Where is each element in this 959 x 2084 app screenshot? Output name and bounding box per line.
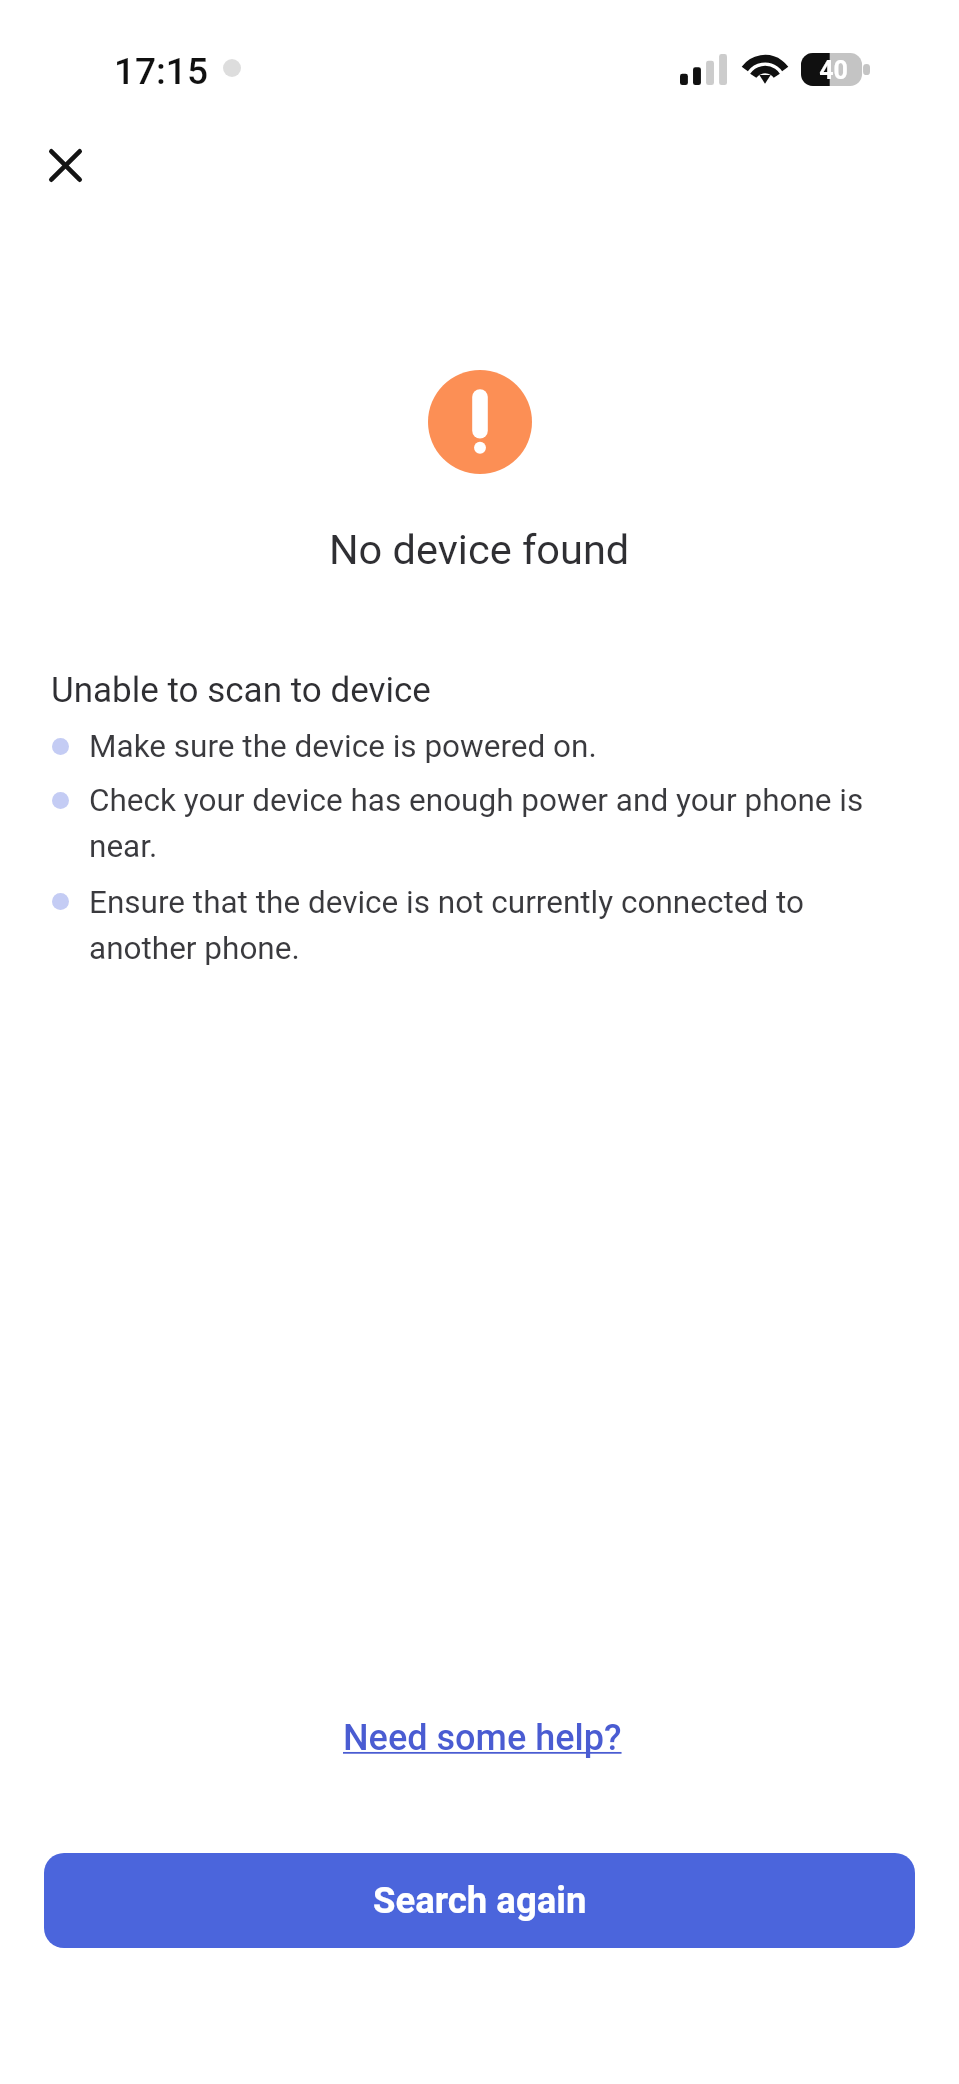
button[interactable]: Need some help? bbox=[331, 1711, 634, 1765]
staticText: Check your device has enough power and y… bbox=[89, 782, 889, 865]
staticText: Ensure that the device is not currently … bbox=[89, 884, 889, 967]
button[interactable]: Search again bbox=[44, 1853, 915, 1948]
staticText: Make sure the device is powered on. bbox=[89, 728, 889, 765]
staticText: 17:15 bbox=[114, 50, 208, 93]
staticText: Search again bbox=[373, 1879, 587, 1922]
staticText: Need some help? bbox=[343, 1717, 622, 1759]
button[interactable]: Close bbox=[23, 123, 107, 207]
staticText: 40 bbox=[819, 56, 848, 85]
staticText: Unable to scan to device bbox=[51, 670, 431, 711]
staticText: No device found bbox=[329, 525, 630, 574]
